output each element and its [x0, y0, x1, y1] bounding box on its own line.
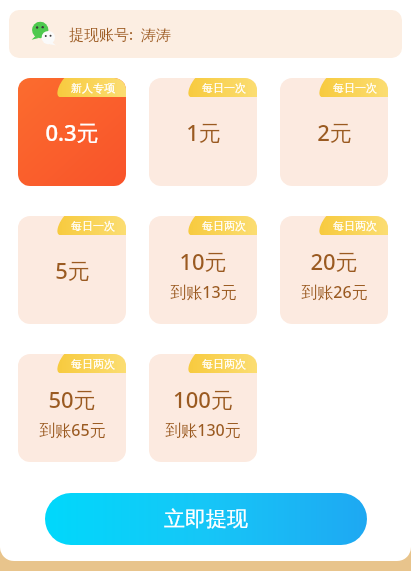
- staticText: 每日两次: [202, 219, 246, 233]
- button[interactable]: 每日两次: [149, 216, 257, 324]
- staticText: 100元: [173, 384, 233, 414]
- button[interactable]: WeChat: [9, 10, 402, 58]
- staticText: 50元: [48, 384, 96, 414]
- button[interactable]: 立即提现: [45, 493, 367, 545]
- button[interactable]: 每日两次: [280, 216, 388, 324]
- staticText: 每日一次: [71, 219, 115, 233]
- staticText: 到账13元: [170, 281, 237, 303]
- button[interactable]: 每日两次: [18, 354, 126, 462]
- button[interactable]: 每日一次: [280, 78, 388, 186]
- staticText: 每日一次: [202, 81, 246, 95]
- staticText: 每日一次: [333, 81, 377, 95]
- staticText: 提现账号: 涛涛: [69, 24, 171, 44]
- staticText: 5元: [55, 255, 90, 285]
- staticText: 到账65元: [39, 419, 106, 441]
- staticText: 2元: [317, 117, 352, 147]
- staticText: 新人专项: [71, 81, 115, 95]
- staticText: 每日两次: [71, 357, 115, 371]
- staticText: 到账26元: [301, 281, 368, 303]
- button[interactable]: 每日两次: [149, 354, 257, 462]
- staticText: 0.3元: [45, 117, 99, 147]
- staticText: 每日两次: [202, 357, 246, 371]
- staticText: 立即提现: [164, 506, 248, 532]
- staticText: 到账130元: [165, 419, 241, 441]
- button[interactable]: 新人专项: [18, 78, 126, 186]
- staticText: 1元: [186, 117, 221, 147]
- button[interactable]: 每日一次: [18, 216, 126, 324]
- button[interactable]: 每日一次: [149, 78, 257, 186]
- staticText: 10元: [179, 246, 227, 276]
- staticText: 每日两次: [333, 219, 377, 233]
- other: WeChat: [31, 21, 57, 47]
- staticText: 20元: [310, 246, 358, 276]
